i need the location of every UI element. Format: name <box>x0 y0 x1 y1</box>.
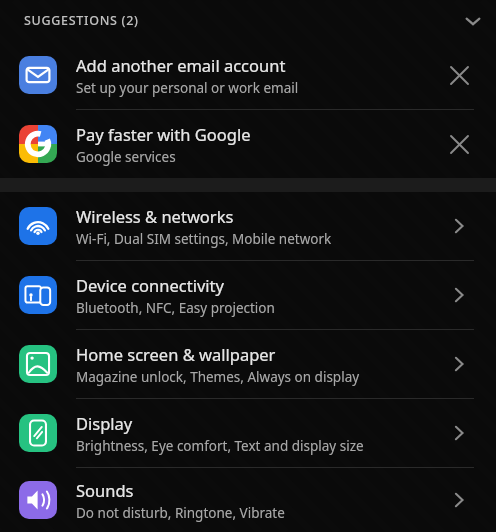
button[interactable]: Device connectivity <box>0 261 496 329</box>
button[interactable]: Add another email account <box>0 41 496 109</box>
staticText: Device connectivity <box>76 274 224 296</box>
button[interactable]: Home screen & wallpaper <box>0 330 496 398</box>
button[interactable]: Sounds <box>0 468 496 532</box>
button[interactable]: Collapse suggestions <box>450 0 496 41</box>
staticText: Sounds <box>76 479 134 501</box>
staticText: Set up your personal or work email <box>76 79 299 97</box>
button[interactable]: Pay faster with Google <box>0 110 496 178</box>
staticText: Wireless & networks <box>76 205 234 227</box>
staticText: Magazine unlock, Themes, Always on displ… <box>76 368 360 386</box>
staticText: Display <box>76 412 133 434</box>
staticText: Pay faster with Google <box>76 123 251 145</box>
button[interactable]: Wireless & networks <box>0 192 496 260</box>
staticText: SUGGESTIONS (2) <box>24 12 139 29</box>
staticText: Google services <box>76 148 176 166</box>
staticText: Bluetooth, NFC, Easy projection <box>76 299 275 317</box>
button[interactable]: SUGGESTIONS (2) <box>0 0 496 41</box>
button[interactable]: Dismiss suggestion <box>434 119 484 169</box>
button[interactable]: Display <box>0 399 496 467</box>
staticText: Home screen & wallpaper <box>76 343 276 365</box>
staticText: Wi-Fi, Dual SIM settings, Mobile network <box>76 230 332 248</box>
staticText: Brightness, Eye comfort, Text and displa… <box>76 437 364 455</box>
staticText: Add another email account <box>76 54 286 76</box>
staticText: Do not disturb, Ringtone, Vibrate <box>76 504 285 522</box>
button[interactable]: Dismiss suggestion <box>434 50 484 100</box>
